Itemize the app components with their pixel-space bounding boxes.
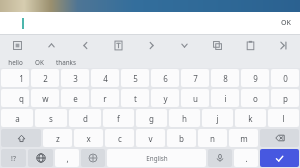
button[interactable]: k [235,109,266,127]
button[interactable]: Stickers [81,149,105,167]
button[interactable]: Enter [260,149,299,167]
button[interactable]: Text box [102,35,135,56]
button[interactable]: thanks [50,57,82,68]
staticText: o [253,93,258,104]
staticText: 8 [223,73,228,84]
button[interactable]: u [181,89,209,107]
button[interactable]: Move right [135,35,168,56]
staticText: i [224,93,227,104]
staticText: w [42,93,49,104]
button[interactable]: Backspace [260,129,299,147]
staticText: 6 [163,73,168,84]
staticText: !? [11,154,16,163]
button[interactable]: Move down [168,35,201,56]
staticText: u [193,93,198,104]
staticText: p [283,93,288,104]
button[interactable]: 4 [91,69,119,87]
staticText: 2 [43,73,48,84]
staticText: OK [35,58,44,67]
staticText: v [148,133,153,144]
button[interactable]: x [74,129,103,147]
button[interactable]: d [69,109,101,127]
button[interactable]: t [121,89,149,107]
button[interactable]: . [234,149,258,167]
button[interactable]: Move left [68,35,102,56]
button[interactable]: q [1,89,29,107]
button[interactable]: , [55,149,79,167]
button[interactable]: English [107,149,206,167]
button[interactable]: i [211,89,239,107]
staticText: h [182,113,187,124]
staticText: 7 [193,73,198,84]
staticText: . [245,153,248,164]
button[interactable]: Select all [0,35,34,56]
staticText: y [163,93,168,104]
staticText: j [216,113,219,124]
button[interactable]: Copy [201,35,234,56]
button[interactable]: z [43,129,72,147]
staticText: 9 [253,73,258,84]
button[interactable]: e [61,89,89,107]
staticText: z [56,133,60,144]
button[interactable]: 1 [1,69,29,87]
button[interactable]: Move to end [267,35,300,56]
button[interactable]: 0 [271,69,299,87]
staticText: f [117,113,120,124]
button[interactable]: g [136,109,167,127]
button[interactable]: Symbols [1,149,26,167]
button[interactable]: f [103,109,134,127]
staticText: hello [8,58,23,67]
button[interactable]: Shift [1,129,41,147]
staticText: s [49,113,53,124]
button[interactable]: a [1,109,33,127]
staticText: , [66,153,69,164]
staticText: n [210,133,215,144]
button[interactable]: r [91,89,119,107]
button[interactable]: p [271,89,299,107]
staticText: OK [281,18,291,28]
button[interactable]: Paste [234,35,267,56]
button[interactable]: hello [2,57,29,68]
staticText: l [282,113,285,124]
button[interactable]: m [229,129,258,147]
button[interactable]: OK [277,15,295,31]
staticText: English [146,154,168,163]
button[interactable]: OK [29,57,50,68]
button[interactable]: 6 [151,69,179,87]
staticText: m [240,133,248,144]
button[interactable]: 2 [31,69,59,87]
staticText: 1 [19,73,24,84]
button[interactable]: Change language [28,149,53,167]
staticText: b [179,133,184,144]
staticText: t [134,93,137,104]
button[interactable]: v [136,129,165,147]
button[interactable]: Move up [34,35,68,56]
button[interactable]: w [31,89,59,107]
button[interactable]: c [105,129,134,147]
staticText: r [103,93,107,104]
button[interactable]: 9 [241,69,269,87]
staticText: g [149,113,154,124]
button[interactable]: j [202,109,233,127]
button[interactable]: 7 [181,69,209,87]
staticText: 4 [103,73,108,84]
button[interactable]: s [35,109,67,127]
button[interactable]: o [241,89,269,107]
staticText: d [83,113,88,124]
button[interactable]: h [169,109,200,127]
staticText: c [118,133,122,144]
button[interactable]: 5 [121,69,149,87]
staticText: 0 [283,73,288,84]
staticText: q [19,93,24,104]
button[interactable]: y [151,89,179,107]
staticText: 5 [133,73,138,84]
button[interactable]: Voice input [208,149,232,167]
button[interactable]: b [167,129,196,147]
staticText: thanks [56,58,76,67]
button[interactable]: 8 [211,69,239,87]
staticText: e [73,93,78,104]
button[interactable]: l [268,109,299,127]
button[interactable]: 3 [61,69,89,87]
button[interactable]: n [198,129,227,147]
staticText: 3 [73,73,78,84]
